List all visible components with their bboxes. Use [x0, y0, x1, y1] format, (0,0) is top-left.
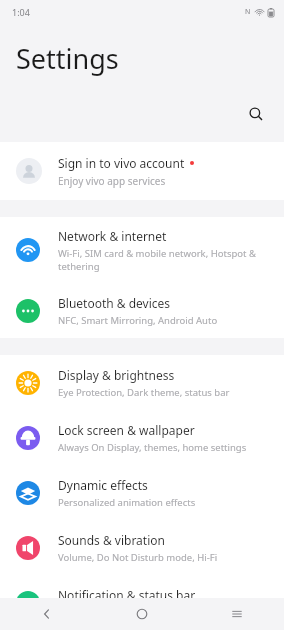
staticText: Always On Display, themes, home settings	[58, 441, 247, 454]
button[interactable]: Recents	[189, 598, 284, 630]
staticText: Settings	[16, 40, 119, 77]
staticText: Eye Protection, Dark theme, status bar	[58, 386, 230, 399]
staticText: Notification management	[58, 606, 173, 619]
button[interactable]: Network & internet	[0, 217, 284, 283]
button[interactable]: Home	[94, 598, 189, 630]
staticText: Bluetooth & devices	[58, 295, 171, 311]
button[interactable]: Display & brightness	[0, 355, 284, 410]
staticText: Sign in to vivo account	[58, 155, 185, 171]
staticText: N	[245, 7, 251, 17]
button[interactable]: Bluetooth & devices	[0, 283, 284, 338]
button[interactable]: Back	[0, 598, 94, 630]
staticText: Wi-Fi, SIM card & mobile network, Hotspo…	[58, 247, 268, 273]
staticText: Volume, Do Not Disturb mode, Hi-Fi	[58, 551, 218, 564]
staticText: Network & internet	[58, 228, 167, 244]
staticText: Dynamic effects	[58, 477, 148, 493]
button[interactable]: Search	[240, 98, 272, 130]
button[interactable]: Sign in to vivo account	[0, 142, 284, 200]
staticText: Personalized animation effects	[58, 496, 196, 509]
staticText: Enjoy vivo app services	[58, 174, 166, 188]
staticText: Lock screen & wallpaper	[58, 422, 195, 438]
staticText: Display & brightness	[58, 367, 175, 383]
button[interactable]: Sounds & vibration	[0, 520, 284, 575]
staticText: NFC, Smart Mirroring, Android Auto	[58, 314, 218, 327]
button[interactable]: Lock screen & wallpaper	[0, 410, 284, 465]
button[interactable]: Notification & status bar	[0, 575, 284, 630]
staticText: Notification & status bar	[58, 587, 196, 603]
staticText: 1:04	[12, 6, 30, 18]
button[interactable]: Dynamic effects	[0, 465, 284, 520]
staticText: Sounds & vibration	[58, 532, 165, 548]
